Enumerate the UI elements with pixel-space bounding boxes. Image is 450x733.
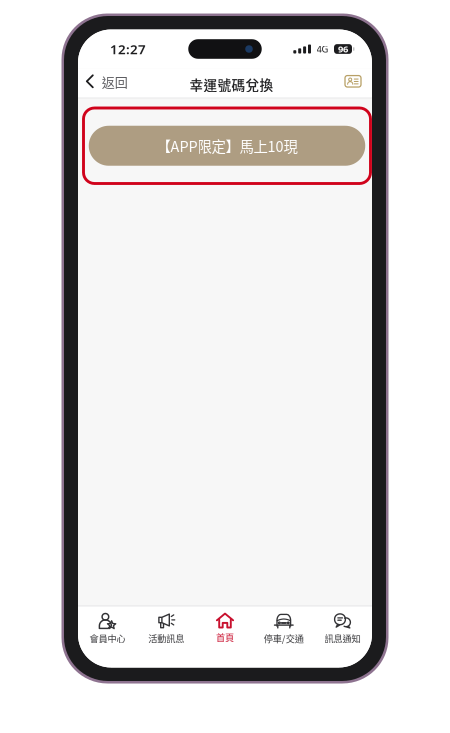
staticText: 首頁 [216,630,234,644]
staticText: 會員中心 [89,631,125,645]
button[interactable]: 首頁 [196,605,254,667]
staticText: 訊息通知 [325,631,361,645]
staticText: 4G [316,43,328,55]
button[interactable]: 返回 [78,66,138,96]
button[interactable]: 活動訊息 [137,605,196,667]
staticText: 96 [338,43,348,55]
staticText: 返回 [102,72,128,91]
staticText: 【APP限定】馬上10現 [156,135,297,156]
staticText: 活動訊息 [148,631,184,645]
staticText: 停車/交通 [264,631,304,645]
staticText: 幸運號碼兌換 [189,74,273,94]
button[interactable]: 會員卡 [335,66,372,96]
button[interactable]: 訊息通知 [313,605,372,667]
button[interactable]: 停車/交通 [254,605,313,667]
button[interactable]: 會員中心 [78,605,137,667]
staticText: 12:27 [110,40,146,58]
button[interactable]: 【APP限定】馬上10現 [89,126,365,166]
